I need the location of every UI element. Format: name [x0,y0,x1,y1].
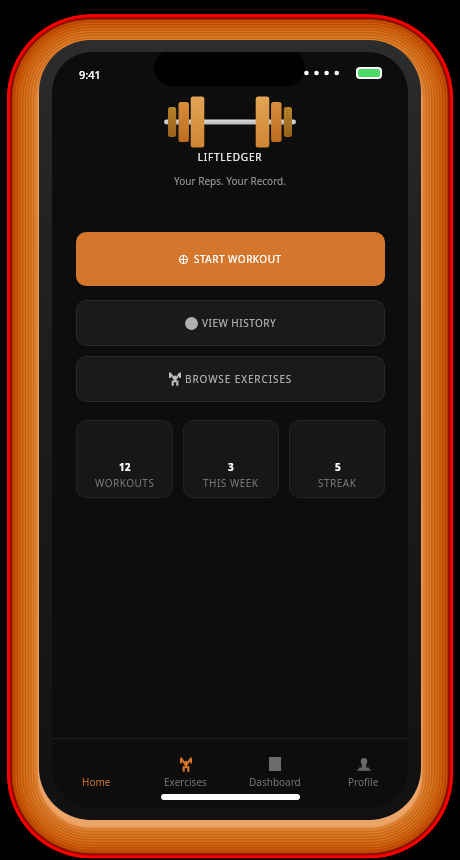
staticText: Dashboard [249,775,301,789]
button[interactable]: START WORKOUT [76,232,385,286]
button[interactable]: 5 [289,420,385,498]
button[interactable]: Home [52,739,141,789]
staticText: START WORKOUT [194,252,282,266]
staticText: THIS WEEK [203,476,259,490]
staticText: BROWSE EXERCISES [185,372,293,386]
staticText: LIFTLEDGER [52,150,408,164]
staticText: Profile [348,775,379,789]
staticText: WORKOUTS [95,476,155,490]
staticText: 3 [228,460,234,474]
button[interactable]: Profile [319,739,408,789]
button[interactable]: Exercises [141,739,230,789]
staticText: Exercises [164,775,207,789]
staticText: 12 [119,460,131,474]
button[interactable]: Dashboard [230,739,319,789]
staticText: Your Reps. Your Record. [52,174,408,188]
staticText: 5 [335,460,341,474]
staticText: STREAK [318,476,357,490]
button[interactable]: BROWSE EXERCISES [76,356,385,402]
staticText: Home [82,775,111,789]
staticText: VIEW HISTORY [202,316,277,330]
button[interactable]: 3 [183,420,279,498]
button[interactable]: VIEW HISTORY [76,300,385,346]
staticText: 9:41 [79,67,101,82]
button[interactable]: 12 [76,420,173,498]
